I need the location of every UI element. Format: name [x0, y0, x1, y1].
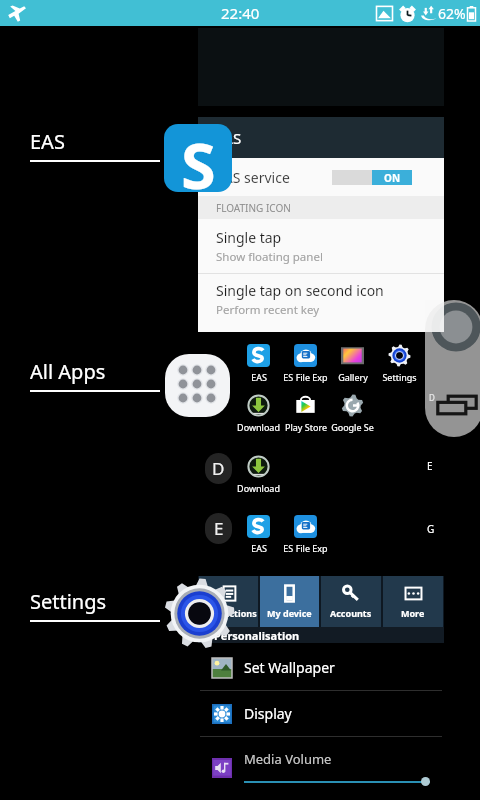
button[interactable]: Media Volume — [198, 737, 444, 799]
staticText: Personalisation — [214, 628, 300, 643]
other: Airplane mode — [7, 3, 27, 23]
staticText: Show floating panel — [216, 249, 323, 265]
button[interactable]: Settings app — [163, 577, 236, 650]
staticText: Set Wallpaper — [244, 658, 335, 677]
button[interactable]: Gallery — [329, 344, 376, 383]
staticText: EAS — [251, 542, 267, 554]
staticText: E — [214, 517, 224, 540]
button[interactable]: Floating panel — [425, 300, 480, 437]
button[interactable]: All apps — [165, 354, 230, 417]
button[interactable]: ES File Exp — [282, 344, 329, 383]
staticText: EAS — [251, 371, 267, 383]
button[interactable]: Download — [235, 394, 282, 433]
button[interactable]: EAS service — [198, 158, 444, 196]
staticText: Accounts — [330, 607, 372, 619]
staticText: ES File Exp — [283, 542, 328, 554]
staticText: Download — [237, 482, 280, 494]
button[interactable]: EAS app — [164, 124, 232, 192]
staticText: 22:40 — [221, 3, 260, 23]
staticText: G — [427, 522, 435, 536]
button[interactable]: D — [205, 453, 232, 484]
staticText: Play Store — [285, 421, 327, 433]
staticText: Settings — [382, 371, 417, 383]
button[interactable]: Settings — [376, 344, 423, 383]
button[interactable]: EAS — [235, 515, 282, 554]
staticText: Display — [244, 704, 292, 723]
staticText: E — [427, 459, 433, 473]
staticText: EAS — [215, 128, 242, 148]
staticText: Connections — [201, 607, 257, 619]
staticText: Google Se — [331, 421, 374, 433]
button[interactable]: ES File Exp — [282, 515, 329, 554]
button[interactable]: More — [383, 576, 443, 627]
staticText: All Apps — [30, 358, 106, 385]
button[interactable]: Download — [235, 455, 282, 494]
staticText: Perform recent key — [216, 302, 320, 318]
button[interactable]: Single tap — [198, 219, 444, 273]
button[interactable]: Accounts — [321, 576, 381, 627]
button[interactable]: Display — [198, 691, 444, 736]
staticText: 62% — [438, 4, 466, 23]
staticText: EAS — [30, 128, 65, 155]
button[interactable]: Set Wallpaper — [198, 645, 444, 690]
staticText: Single tap — [216, 228, 282, 247]
staticText: Single tap on second icon — [216, 281, 384, 300]
staticText: ON — [384, 171, 401, 185]
button[interactable]: Google Se — [329, 394, 376, 433]
staticText: Download — [237, 421, 280, 433]
button[interactable]: Connections — [199, 576, 258, 627]
button[interactable]: Single tap on second icon — [198, 274, 444, 332]
staticText: ES File Exp — [283, 371, 328, 383]
staticText: Settings — [30, 588, 107, 615]
staticText: My device — [267, 607, 312, 619]
staticText: EAS service — [216, 168, 290, 187]
staticText: D — [429, 392, 435, 403]
button[interactable]: Play Store — [282, 394, 329, 433]
button[interactable]: E — [205, 513, 232, 544]
staticText: More — [401, 607, 425, 619]
button[interactable]: EAS — [235, 344, 282, 383]
staticText: FLOATING ICON — [216, 201, 291, 215]
staticText: S — [181, 124, 216, 190]
button[interactable]: My device — [260, 576, 319, 627]
staticText: Media Volume — [244, 750, 332, 768]
staticText: Gallery — [338, 371, 368, 383]
staticText: D — [212, 457, 225, 480]
